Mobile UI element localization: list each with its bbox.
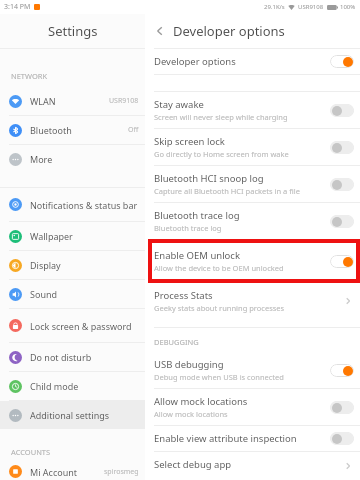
staticText: 3:14 PM	[4, 2, 31, 12]
button[interactable]: Back	[151, 22, 169, 40]
staticText: USB debugging	[154, 358, 224, 371]
button[interactable]: Sound	[0, 280, 145, 309]
button[interactable]: Toggle off	[330, 215, 354, 228]
button[interactable]: Toggle on	[330, 55, 354, 68]
staticText: Additional settings	[30, 409, 110, 421]
button[interactable]: Allow mock locations	[145, 389, 360, 426]
staticText: Wallpaper	[30, 230, 73, 242]
staticText: Process Stats	[154, 289, 213, 302]
button[interactable]: Select debug app	[145, 452, 360, 480]
staticText: Allow mock locations	[154, 395, 248, 408]
staticText: Developer options	[154, 55, 236, 68]
staticText: Bluetooth HCI snoop log	[154, 172, 264, 185]
staticText: USR9108	[298, 3, 324, 11]
staticText: ACCOUNTS	[11, 447, 51, 457]
staticText: Enable view attribute inspection	[154, 432, 297, 445]
staticText: Lock screen & password	[30, 320, 132, 332]
staticText: Bluetooth trace log	[154, 209, 240, 222]
staticText: Child mode	[30, 380, 79, 392]
staticText: 29.1K/s	[264, 3, 285, 11]
button[interactable]: Wallpaper	[0, 222, 145, 251]
button[interactable]: Toggle on	[330, 364, 354, 377]
staticText: Allow mock locations	[154, 409, 228, 419]
button[interactable]: Toggle on	[330, 255, 354, 268]
staticText: Mi Account	[30, 466, 78, 478]
button[interactable]: Toggle off	[330, 178, 354, 191]
button[interactable]: Do not disturb	[0, 343, 145, 372]
staticText: Debug mode when USB is connected	[154, 372, 284, 382]
staticText: Do not disturb	[30, 351, 92, 363]
staticText: Stay awake	[154, 98, 204, 111]
staticText: Skip screen lock	[154, 135, 225, 148]
staticText: DEBUGGING	[154, 337, 199, 347]
staticText: Sound	[30, 288, 58, 300]
staticText: Go directly to Home screen from wake	[154, 149, 289, 159]
button[interactable]: Notifications & status bar	[0, 188, 145, 222]
button[interactable]: Display	[0, 251, 145, 280]
staticText: Developer options	[173, 22, 285, 40]
staticText: Settings	[48, 22, 98, 40]
staticText: Bluetooth	[30, 124, 72, 136]
button[interactable]: Toggle off	[330, 401, 354, 414]
button[interactable]: Developer options	[145, 49, 360, 75]
staticText: Enable OEM unlock	[154, 249, 240, 262]
staticText: Screen will never sleep while charging	[154, 112, 288, 122]
button[interactable]: Toggle off	[330, 104, 354, 117]
button[interactable]: Lock screen & password	[0, 309, 145, 343]
button[interactable]: Stay awake	[145, 92, 360, 129]
button[interactable]: Enable OEM unlock	[145, 239, 360, 283]
button[interactable]: Bluetooth trace log	[145, 203, 360, 239]
staticText: Allow the device to be OEM unlocked	[154, 263, 284, 273]
staticText: More	[30, 153, 53, 165]
staticText: Display	[30, 259, 61, 271]
staticText: spirosmeg	[104, 467, 139, 477]
staticText: NETWORK	[11, 71, 48, 81]
staticText: Off	[128, 125, 139, 135]
button[interactable]: Toggle off	[330, 141, 354, 154]
button[interactable]: Skip screen lock	[145, 129, 360, 166]
staticText: USR9108	[109, 96, 139, 106]
button[interactable]: Process Stats	[145, 283, 360, 319]
staticText: 100%	[340, 3, 356, 11]
staticText: Bluetooth trace log	[154, 223, 222, 233]
button[interactable]: More	[0, 145, 145, 173]
button[interactable]: Additional settings	[0, 401, 145, 429]
button[interactable]: Enable view attribute inspection	[145, 426, 360, 452]
staticText: WLAN	[30, 95, 56, 107]
staticText: Capture all Bluetooth HCI packets in a f…	[154, 186, 300, 196]
button[interactable]: WLAN	[0, 87, 145, 116]
button[interactable]: Mi Account	[0, 463, 145, 480]
button[interactable]: Bluetooth	[0, 116, 145, 145]
button[interactable]: Child mode	[0, 372, 145, 401]
staticText: Select debug app	[154, 458, 232, 471]
staticText: Geeky stats about running processes	[154, 303, 285, 313]
button[interactable]: Bluetooth HCI snoop log	[145, 166, 360, 203]
staticText: Notifications & status bar	[30, 199, 138, 211]
button[interactable]: Toggle off	[330, 432, 354, 445]
button[interactable]: USB debugging	[145, 352, 360, 389]
